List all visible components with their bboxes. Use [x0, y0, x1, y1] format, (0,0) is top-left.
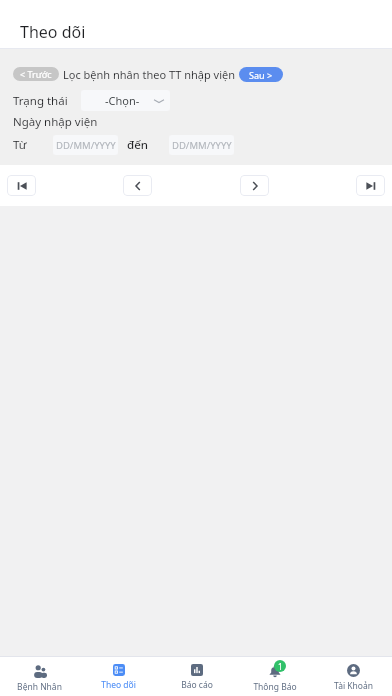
staticText: Lọc bệnh nhân theo TT nhập viện	[63, 67, 236, 82]
button[interactable]: 1	[236, 657, 314, 693]
button[interactable]: Báo cáo	[158, 657, 236, 691]
button[interactable]: Chọn trạng thái	[81, 90, 170, 111]
staticText: Tài Khoản	[334, 680, 373, 692]
staticText: Bệnh Nhân	[17, 681, 62, 693]
staticText: Báo cáo	[181, 679, 213, 691]
button[interactable]: Sau >	[239, 67, 283, 82]
staticText: Theo dõi	[20, 21, 86, 43]
button[interactable]: Previous page	[123, 175, 152, 196]
button[interactable]: Bệnh Nhân	[0, 657, 79, 693]
button[interactable]: Last page	[356, 175, 385, 196]
staticText: Từ	[13, 137, 27, 153]
button[interactable]: First page	[7, 175, 36, 196]
button[interactable]: Ngày DD/MM/YYYY	[53, 135, 118, 155]
staticText: < Trước	[20, 68, 52, 80]
staticText: Ngày nhập viện	[13, 114, 98, 130]
button[interactable]: Theo dõi	[79, 657, 158, 691]
button[interactable]: < Trước	[13, 67, 59, 81]
staticText: -Chọn-	[105, 93, 140, 108]
staticText: Theo dõi	[101, 679, 136, 691]
staticText: Sau >	[249, 69, 273, 81]
staticText: Thông Báo	[253, 681, 297, 693]
button[interactable]: Tài Khoản	[314, 657, 392, 692]
button[interactable]: Next page	[240, 175, 269, 196]
staticText: DD/MM/YYYY	[56, 139, 116, 152]
staticText: Trạng thái	[13, 93, 68, 109]
staticText: đến	[127, 137, 148, 153]
button[interactable]: Ngày DD/MM/YYYY	[169, 135, 234, 155]
staticText: 1	[278, 661, 283, 672]
staticText: DD/MM/YYYY	[172, 139, 232, 152]
